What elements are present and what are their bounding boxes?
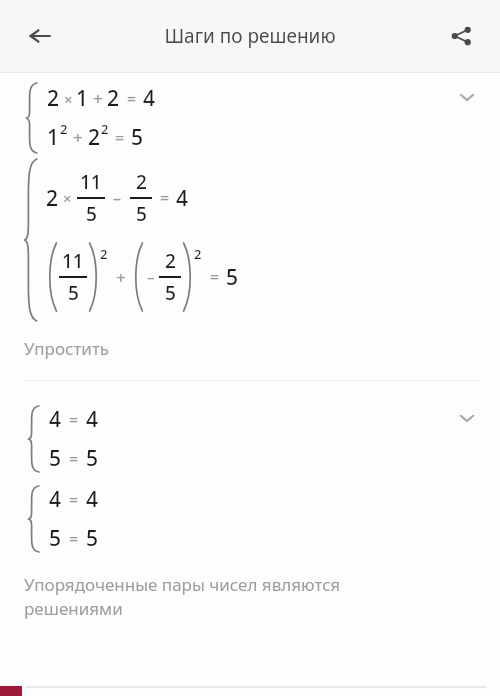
staticText: 5 xyxy=(131,123,144,152)
button[interactable]: Share xyxy=(436,11,486,61)
staticText: 5 xyxy=(68,280,79,306)
staticText: – xyxy=(147,267,155,287)
staticText: 5 xyxy=(86,201,97,227)
staticText: 1 xyxy=(47,123,60,152)
staticText: 2 xyxy=(165,248,176,274)
staticText: = xyxy=(160,187,170,209)
staticText: 4 xyxy=(49,485,62,514)
staticText: 5 xyxy=(165,280,176,306)
staticText: 5 xyxy=(86,524,99,553)
staticText: = xyxy=(115,127,125,149)
button[interactable]: Back xyxy=(14,10,66,62)
staticText: 2 xyxy=(107,84,120,113)
staticText: = xyxy=(69,489,79,511)
staticText: × xyxy=(64,89,73,109)
staticText: = xyxy=(69,448,79,470)
staticText: 2 xyxy=(101,120,109,138)
staticText: 2 xyxy=(100,245,108,263)
staticText: + xyxy=(93,87,103,110)
staticText: Упорядоченные пары чисел являются решени… xyxy=(24,573,341,620)
staticText: 2 xyxy=(136,169,147,195)
staticText: 5 xyxy=(136,201,147,227)
button[interactable]: 4 xyxy=(0,381,500,620)
staticText: 2 xyxy=(47,84,60,113)
staticText: 2 xyxy=(46,184,59,213)
staticText: 4 xyxy=(143,84,156,113)
staticText: 5 xyxy=(86,444,99,473)
staticText: 1 xyxy=(76,84,89,113)
staticText: 11 xyxy=(80,169,102,195)
staticText: 2 xyxy=(88,123,101,152)
staticText: + xyxy=(116,266,126,289)
staticText: × xyxy=(63,188,72,208)
staticText: – xyxy=(113,187,122,209)
staticText: = xyxy=(69,528,79,550)
staticText: 4 xyxy=(49,405,62,434)
staticText: = xyxy=(127,88,137,110)
staticText: = xyxy=(210,266,220,288)
staticText: 2 xyxy=(60,120,68,138)
staticText: 4 xyxy=(86,485,99,514)
staticText: 5 xyxy=(226,263,239,292)
staticText: 5 xyxy=(49,444,62,473)
staticText: 4 xyxy=(86,405,99,434)
staticText: Шаги по решению xyxy=(164,23,336,49)
staticText: + xyxy=(73,126,83,149)
staticText: 2 xyxy=(194,245,202,263)
staticText: = xyxy=(69,409,79,431)
staticText: 4 xyxy=(176,184,189,213)
staticText: 5 xyxy=(49,524,62,553)
button[interactable]: 2 xyxy=(0,73,500,380)
staticText: Упростить xyxy=(24,337,110,360)
staticText: 11 xyxy=(62,248,84,274)
